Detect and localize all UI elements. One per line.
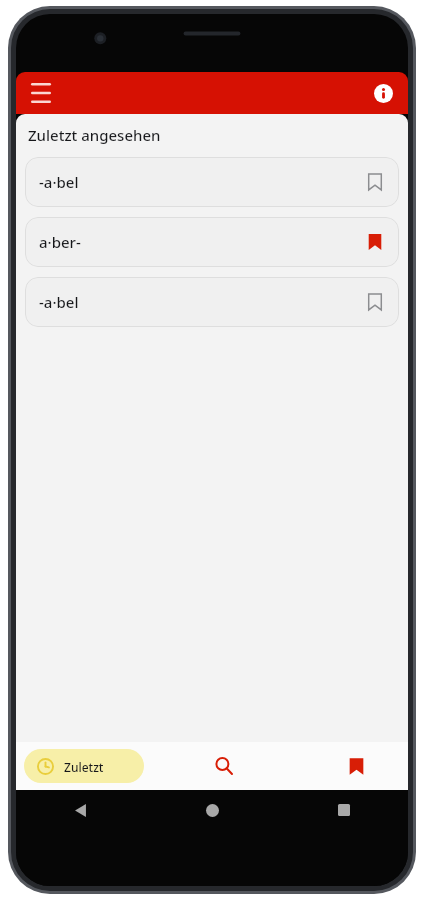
- button[interactable]: Information: [368, 78, 398, 108]
- staticText: Zuletzt angesehen: [28, 125, 161, 145]
- button[interactable]: Zurück: [60, 790, 100, 830]
- button[interactable]: Suchen: [144, 742, 304, 790]
- button[interactable]: Lesezeichen: [304, 742, 408, 790]
- button[interactable]: Zuletzt: [24, 749, 144, 783]
- button[interactable]: -a·bel: [25, 277, 399, 327]
- button[interactable]: Lesezeichen hinzufügen: [353, 280, 397, 324]
- button[interactable]: Menü öffnen: [24, 76, 58, 110]
- staticText: Zuletzt: [64, 759, 104, 775]
- button[interactable]: Startbildschirm: [192, 790, 232, 830]
- button[interactable]: Lesezeichen entfernen: [353, 220, 397, 264]
- staticText: a·ber-: [39, 232, 353, 252]
- button[interactable]: Übersicht: [324, 790, 364, 830]
- staticText: -a·bel: [39, 172, 353, 192]
- button[interactable]: Lesezeichen hinzufügen: [353, 160, 397, 204]
- staticText: -a·bel: [39, 292, 353, 312]
- button[interactable]: -a·bel: [25, 157, 399, 207]
- button[interactable]: a·ber-: [25, 217, 399, 267]
